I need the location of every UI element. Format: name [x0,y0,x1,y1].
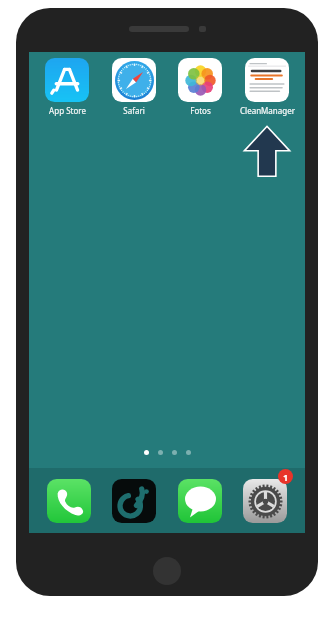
button[interactable]: Settings [233,469,297,533]
staticText: CleanManager [240,105,295,116]
staticText: Fotos [190,105,211,116]
button[interactable]: Home [153,557,181,585]
button[interactable]: CleanManager [235,58,299,116]
button[interactable]: Phone [37,469,101,533]
button[interactable]: Safari [102,58,166,116]
staticText: App Store [49,105,86,116]
staticText: 1 [283,471,289,483]
button[interactable]: Messages [168,469,232,533]
button[interactable]: Media [102,469,166,533]
button[interactable]: Fotos [168,58,232,116]
staticText: Safari [123,105,145,116]
button[interactable]: App Store [35,58,99,116]
